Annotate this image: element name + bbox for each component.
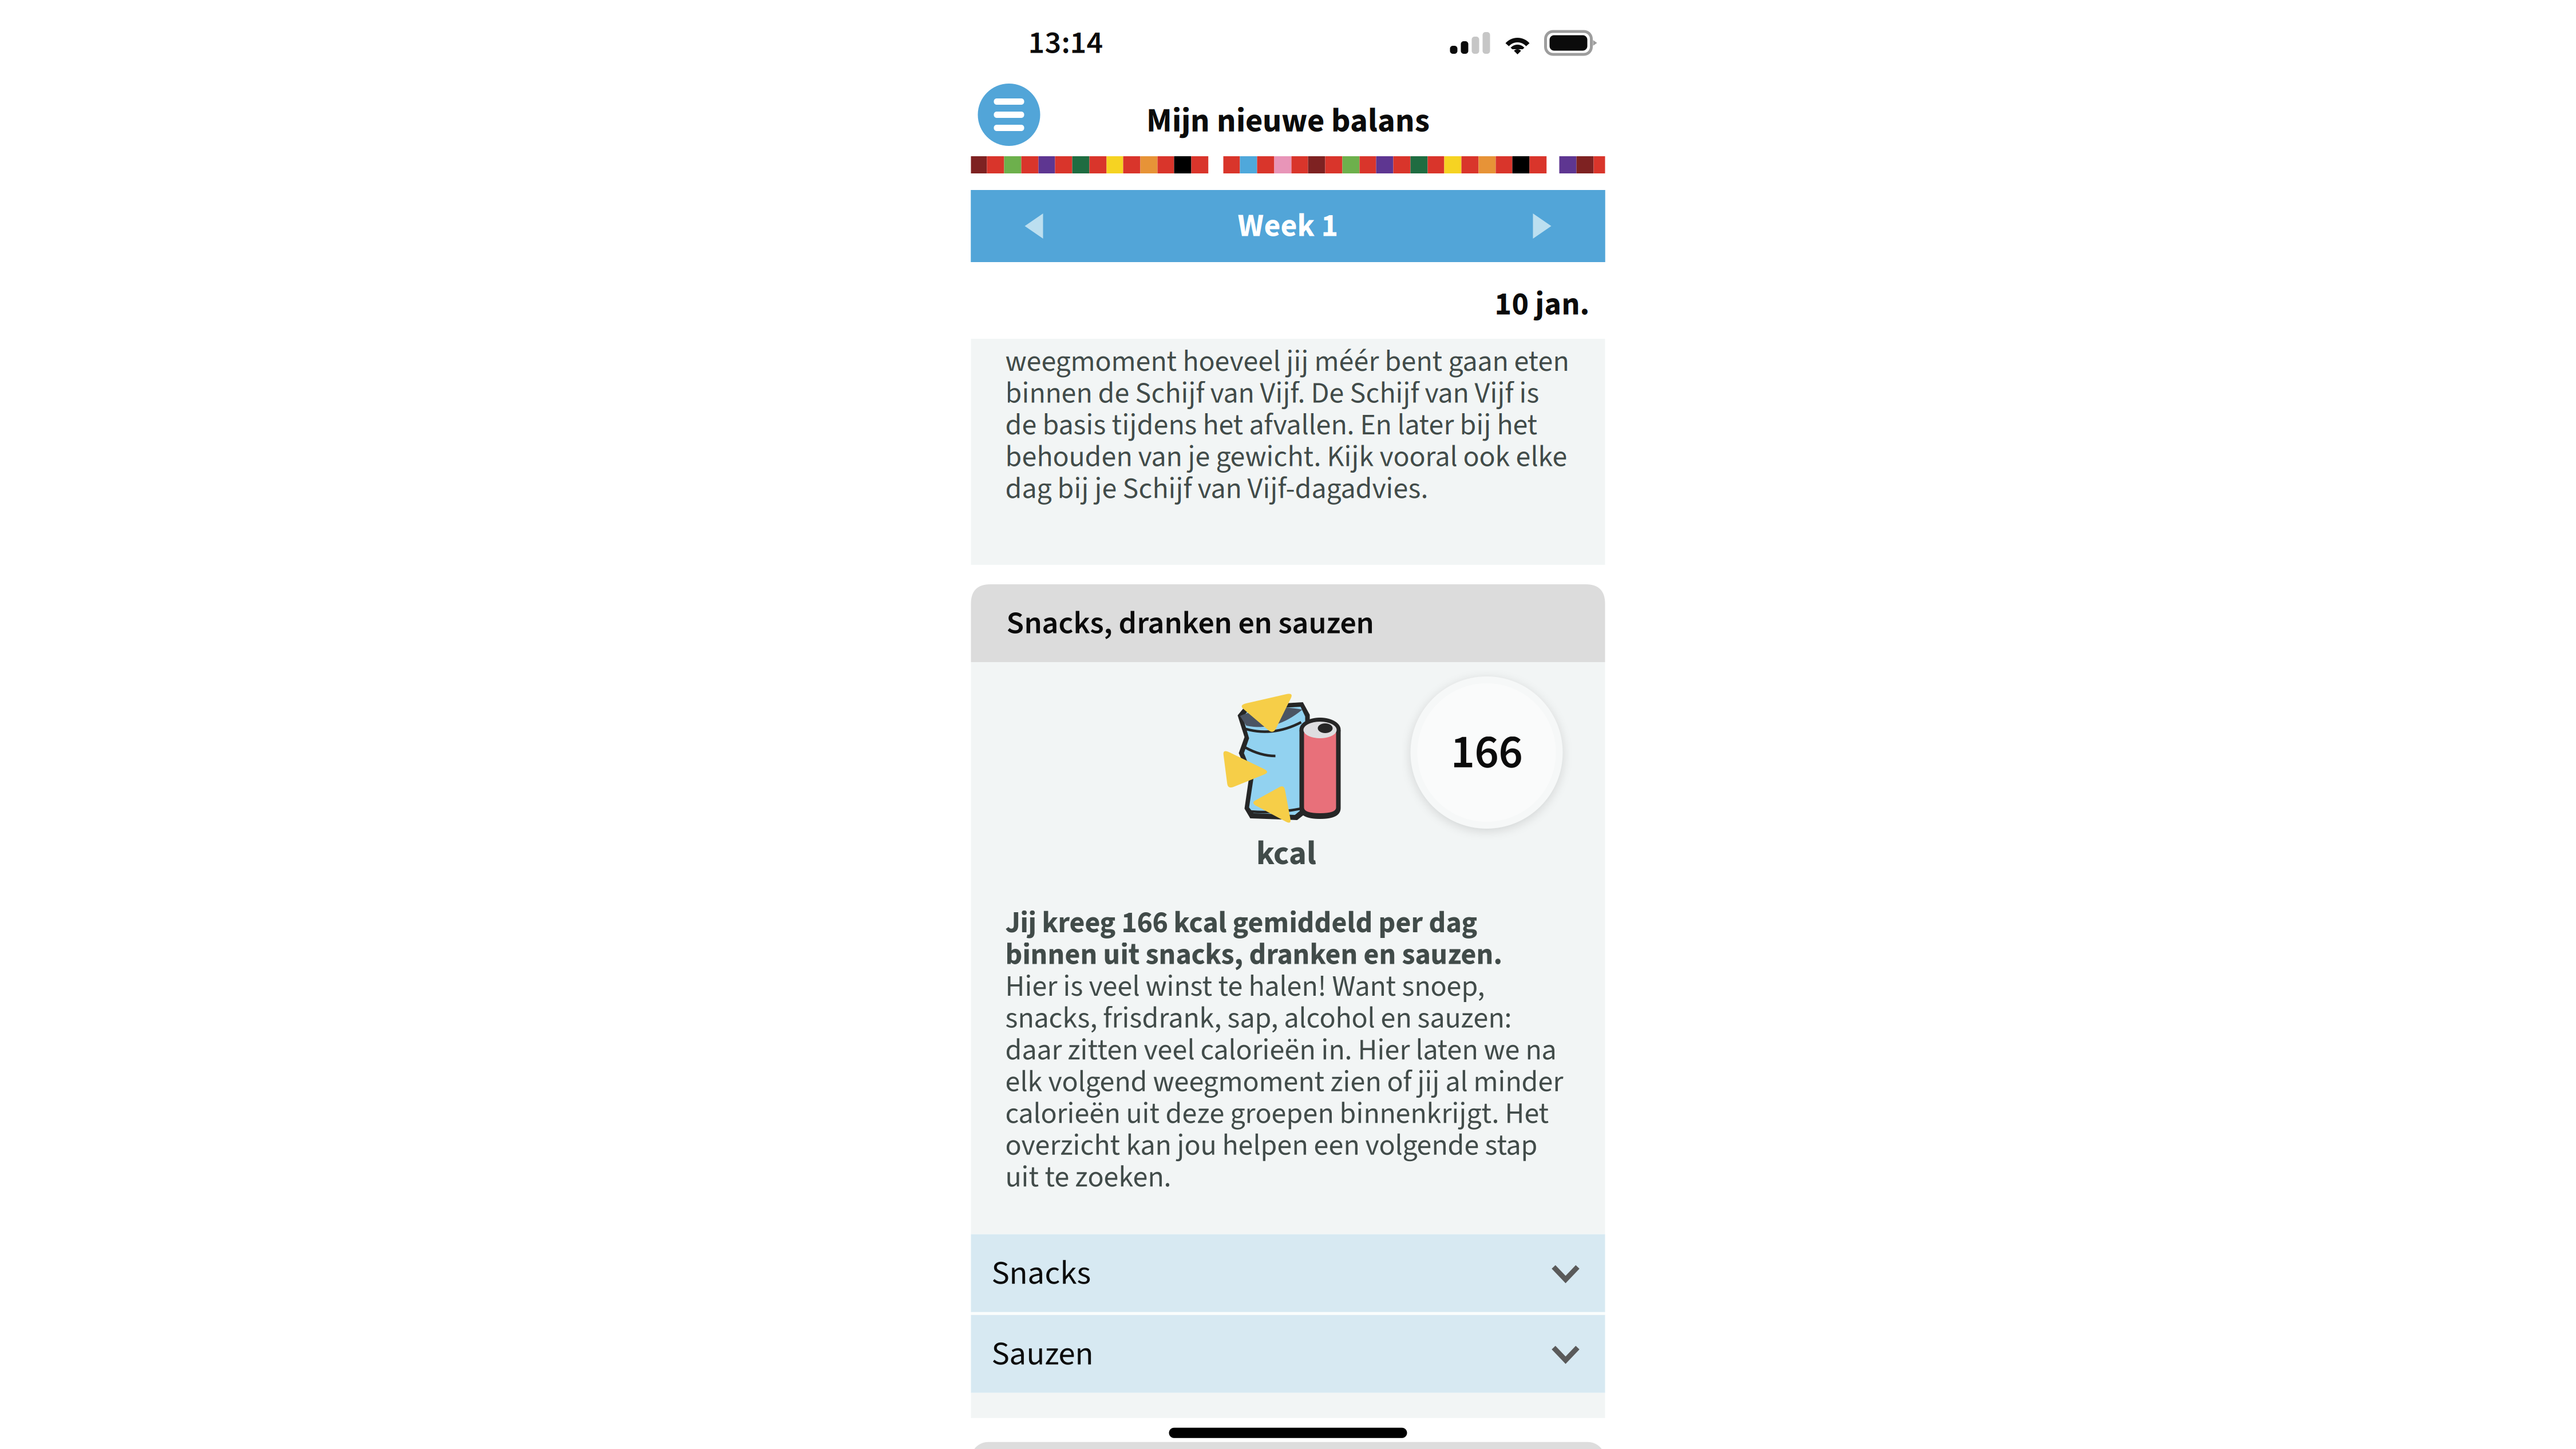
- staticText: Snacks: [992, 1249, 1091, 1297]
- staticText: 166: [1451, 719, 1523, 786]
- staticText: 10 jan.: [1495, 282, 1590, 327]
- staticText: Week 1: [1238, 203, 1338, 249]
- staticText: 13:14: [1028, 20, 1103, 66]
- staticText: Mijn nieuwe balans: [1146, 97, 1430, 145]
- staticText: Jij kreeg 166 kcal gemiddeld per dag bin…: [1005, 907, 1503, 971]
- button[interactable]: Next week: [1479, 190, 1605, 262]
- staticText: kcal: [1256, 830, 1316, 878]
- button[interactable]: Sauzen: [971, 1315, 1605, 1393]
- button[interactable]: Snacks: [971, 1234, 1605, 1312]
- staticText: Hier is veel winst te halen! Want snoep,…: [1005, 971, 1563, 1193]
- staticText: weegmoment hoeveel jij méér bent gaan et…: [1005, 346, 1569, 505]
- button[interactable]: Menu: [978, 84, 1040, 146]
- staticText: Sauzen: [992, 1330, 1093, 1378]
- staticText: Snacks, dranken en sauzen: [1006, 600, 1374, 646]
- button[interactable]: Previous week: [971, 190, 1097, 262]
